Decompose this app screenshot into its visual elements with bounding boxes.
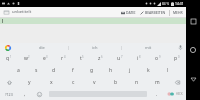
staticText: 0 (178, 55, 180, 59)
button[interactable]: Komma (18, 88, 32, 100)
button[interactable]: o (148, 52, 167, 64)
button[interactable]: b (105, 76, 126, 88)
button[interactable]: s (27, 64, 45, 76)
button[interactable]: BEARBEITEN (139, 9, 167, 16)
staticText: 14:31 (175, 1, 184, 6)
other: Menü (4, 10, 9, 15)
staticText: 4 (64, 55, 66, 59)
button[interactable]: h (101, 64, 120, 76)
staticText: 2 (28, 55, 30, 59)
staticText: l (167, 67, 169, 74)
button[interactable]: v (84, 76, 105, 88)
staticText: , (24, 91, 26, 98)
button[interactable]: q (0, 52, 18, 64)
staticText: w (24, 55, 28, 62)
staticText: x (50, 79, 53, 86)
button[interactable]: t (72, 52, 91, 64)
button[interactable]: ?123 (0, 88, 18, 100)
staticText: MEHR (173, 10, 183, 15)
staticText: DATEI (126, 10, 136, 15)
button[interactable]: i (129, 52, 148, 64)
staticText: h (109, 67, 113, 74)
button[interactable]: n (126, 76, 147, 88)
button[interactable]: g (82, 64, 101, 76)
button[interactable]: Umschalttaste (0, 76, 18, 88)
button[interactable]: l (158, 64, 177, 76)
staticText: t (80, 55, 82, 62)
staticText: b (114, 79, 118, 86)
button[interactable]: e (36, 52, 54, 64)
button[interactable]: Menü (3, 8, 33, 16)
staticText: k (147, 67, 150, 74)
button[interactable]: Zurück (186, 72, 200, 86)
button[interactable]: z (91, 52, 110, 64)
button[interactable]: mit (122, 43, 174, 52)
button[interactable]: Google (0, 43, 16, 52)
button[interactable]: p (167, 52, 186, 64)
staticText: o (155, 55, 159, 62)
button[interactable]: MEHR (172, 9, 184, 16)
button[interactable]: ich (69, 43, 121, 52)
staticText: die (39, 45, 45, 50)
staticText: f (72, 67, 74, 74)
staticText: 6 (101, 55, 103, 59)
staticText: i (137, 55, 139, 62)
staticText: y (28, 79, 31, 86)
button[interactable]: DATEI (120, 9, 137, 16)
staticText: d (52, 67, 56, 74)
staticText: m (155, 79, 160, 86)
button[interactable]: Startbildschirm (186, 43, 200, 57)
button[interactable]: Punkt (150, 88, 164, 100)
staticText: 9 (159, 55, 161, 59)
staticText: 84 % (162, 2, 170, 6)
staticText: 1 (10, 55, 12, 59)
staticText: z (98, 55, 101, 62)
button[interactable]: Emoji (32, 88, 46, 100)
staticText: 8 (139, 55, 141, 59)
staticText: v (93, 79, 96, 86)
staticText: a (17, 67, 20, 74)
button[interactable]: m (147, 76, 168, 88)
staticText: j (129, 67, 131, 74)
button[interactable]: Spracheingabe (174, 43, 186, 52)
button[interactable]: k (139, 64, 158, 76)
staticText: 3 (46, 55, 48, 59)
staticText: u (117, 55, 121, 62)
staticText: p (174, 55, 178, 62)
staticText: ?123 (5, 92, 13, 97)
button[interactable]: c (62, 76, 84, 88)
button[interactable]: Löschen (168, 76, 186, 88)
staticText: g (90, 67, 94, 74)
staticText: r (61, 55, 64, 62)
staticText: c (72, 79, 75, 86)
button[interactable]: Zuletzt verwendet (186, 14, 200, 28)
button[interactable]: w (18, 52, 36, 64)
staticText: e (43, 55, 46, 62)
button[interactable]: Eingabe (164, 88, 186, 100)
staticText: HECK (176, 92, 183, 96)
button[interactable]: x (40, 76, 62, 88)
button[interactable]: die (16, 43, 68, 52)
staticText: q (6, 55, 10, 62)
button[interactable]: u (110, 52, 129, 64)
staticText: mit (145, 45, 152, 50)
button[interactable]: f (63, 64, 82, 76)
staticText: ich (92, 45, 98, 50)
staticText: unbetitelt (12, 9, 32, 15)
staticText: . (156, 91, 158, 98)
staticText: 7 (121, 55, 123, 59)
button[interactable]: j (120, 64, 139, 76)
button[interactable]: d (45, 64, 63, 76)
button[interactable]: r (54, 52, 72, 64)
staticText: BEARBEITEN (145, 10, 166, 15)
staticText: n (135, 79, 139, 86)
button[interactable]: a (9, 64, 27, 76)
button[interactable]: y (18, 76, 40, 88)
staticText: s (35, 67, 38, 74)
staticText: 5 (82, 55, 84, 59)
